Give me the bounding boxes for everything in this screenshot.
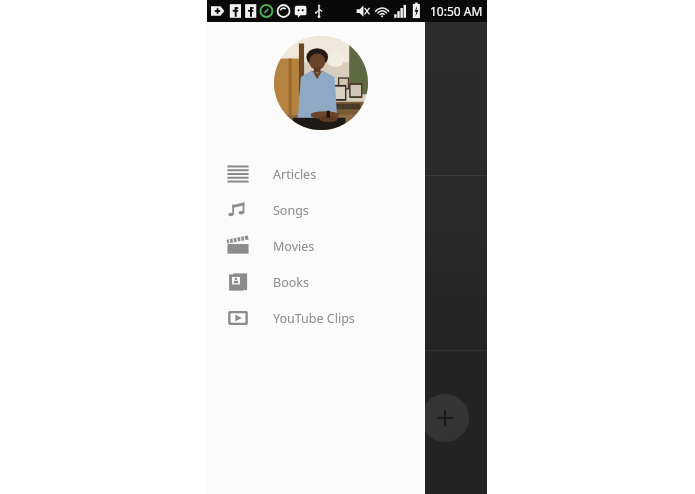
staticText: Books <box>273 274 309 291</box>
staticText: Articles <box>273 166 317 183</box>
button[interactable]: Songs <box>207 192 425 228</box>
button[interactable]: Articles <box>207 156 425 192</box>
staticText: Songs <box>273 202 309 219</box>
button[interactable]: Movies <box>207 228 425 264</box>
staticText: YouTube Clips <box>273 310 355 327</box>
button[interactable]: Books <box>207 264 425 300</box>
button[interactable]: Add <box>421 394 469 442</box>
staticText: 10:50 AM <box>430 3 483 19</box>
button[interactable]: Profile photo <box>274 36 368 130</box>
button[interactable]: YouTube Clips <box>207 300 425 336</box>
staticText: Movies <box>273 238 315 255</box>
